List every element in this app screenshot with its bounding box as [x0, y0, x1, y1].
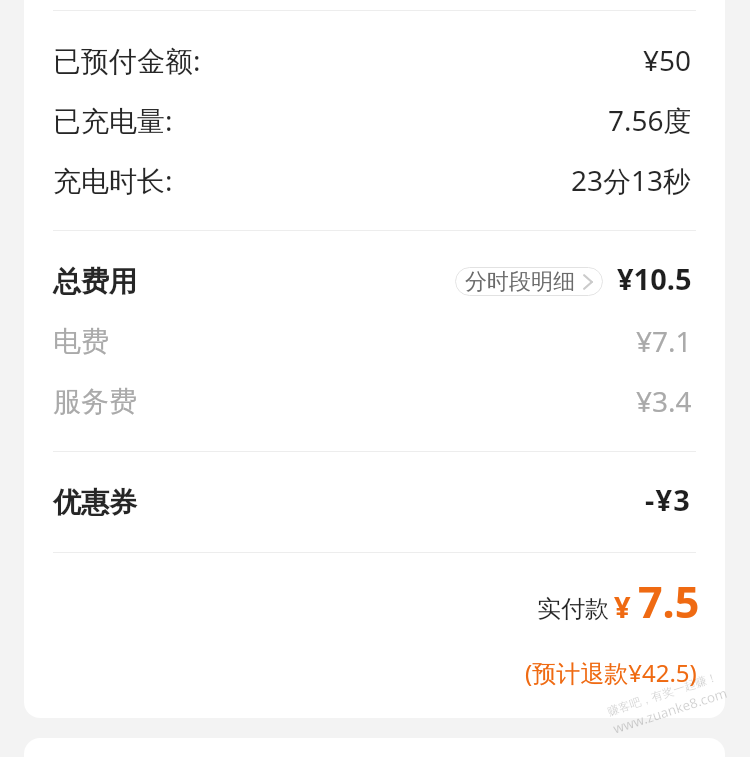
button[interactable]: 优惠券 — [53, 452, 696, 552]
staticText: ¥3.4 — [636, 382, 692, 420]
staticText: 充电时长: — [53, 161, 173, 199]
staticText: ¥10.5 — [617, 259, 692, 298]
staticText: -¥3 — [645, 480, 692, 519]
staticText: ¥7.1 — [636, 322, 692, 360]
staticText: (预计退款¥42.5) — [525, 656, 697, 689]
staticText: 赚客吧，有奖一起赚！ — [606, 670, 719, 719]
staticText: ¥50 — [643, 41, 692, 79]
staticText: 7.5 — [638, 572, 700, 631]
other: View time-of-use detail — [582, 274, 594, 290]
staticText: 服务费 — [53, 384, 137, 419]
staticText: 已预付金额: — [53, 41, 201, 79]
button[interactable]: 分时段明细 — [455, 267, 603, 296]
staticText: 已充电量: — [53, 101, 173, 139]
staticText: 优惠券 — [53, 485, 137, 520]
staticText: 实付款 — [537, 594, 609, 624]
staticText: 7.56度 — [608, 101, 692, 139]
staticText: 电费 — [53, 324, 109, 359]
staticText: 总费用 — [53, 264, 137, 299]
staticText: www.zuanke8.com — [611, 684, 729, 738]
staticText: 分时段明细 — [465, 268, 575, 296]
staticText: ¥ — [614, 587, 631, 626]
staticText: 23分13秒 — [571, 161, 692, 199]
